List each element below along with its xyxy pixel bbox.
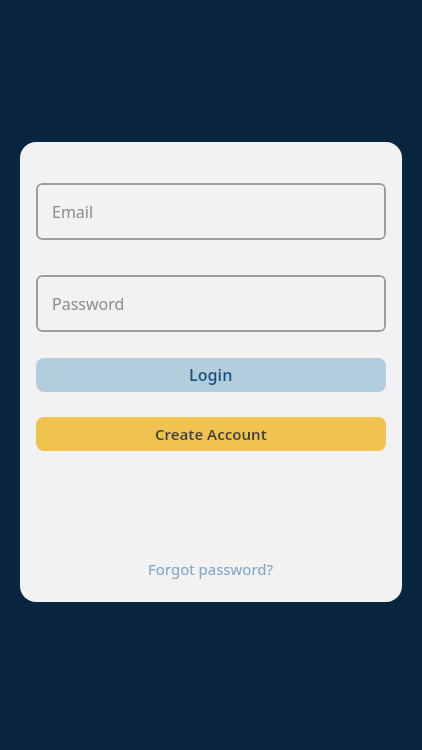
staticText: Password [52, 293, 125, 315]
button[interactable]: Password [36, 275, 386, 332]
button[interactable]: Login [36, 358, 386, 392]
staticText: Create Account [155, 424, 267, 444]
button[interactable]: Create Account [36, 417, 386, 451]
button[interactable]: Email [36, 183, 386, 240]
staticText: Login [189, 364, 233, 386]
staticText: Email [52, 201, 94, 223]
button[interactable]: Forgot password? [148, 559, 274, 579]
